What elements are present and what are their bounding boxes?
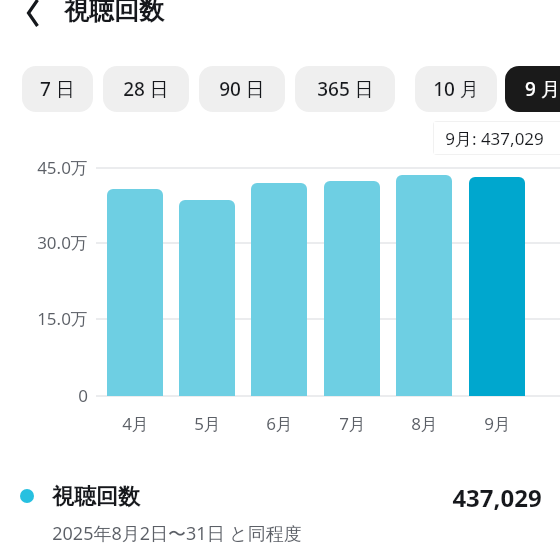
staticText: 9月: 437,029 <box>445 127 544 150</box>
staticText: 4月 <box>122 412 149 435</box>
button[interactable] <box>107 189 163 396</box>
staticText: 365 日 <box>317 76 374 102</box>
staticText: 8月 <box>411 412 438 435</box>
button[interactable]: 28 日 <box>103 66 189 112</box>
staticText: 30.0万 <box>37 231 88 254</box>
button[interactable]: 視聴回数 <box>0 481 560 513</box>
staticText: 0 <box>78 384 88 407</box>
button[interactable] <box>251 183 307 396</box>
button[interactable]: 10 月 <box>415 66 497 112</box>
staticText: 9 月 <box>525 76 560 102</box>
staticText: 6月 <box>266 412 293 435</box>
staticText: 5月 <box>194 412 221 435</box>
staticText: 7 日 <box>40 76 75 102</box>
button[interactable]: 7 日 <box>22 66 93 112</box>
button[interactable] <box>179 200 235 396</box>
staticText: 15.0万 <box>37 307 88 330</box>
staticText: 7月 <box>339 412 366 435</box>
staticText: 視聴回数 <box>52 483 140 511</box>
button[interactable] <box>469 177 525 396</box>
button[interactable]: Back <box>13 0 53 33</box>
button[interactable] <box>396 175 452 396</box>
button[interactable]: 9 月 <box>505 66 560 112</box>
staticText: 45.0万 <box>37 156 88 179</box>
staticText: 2025年8月2日〜31日 と同程度 <box>52 521 302 546</box>
button[interactable] <box>324 181 380 396</box>
button[interactable]: 365 日 <box>295 66 395 112</box>
button[interactable]: 90 日 <box>199 66 285 112</box>
staticText: 28 日 <box>123 76 169 102</box>
staticText: 90 日 <box>219 76 265 102</box>
staticText: 10 月 <box>433 76 479 102</box>
staticText: 9月 <box>484 412 511 435</box>
staticText: 437,029 <box>452 481 542 513</box>
staticText: 視聴回数 <box>64 0 164 26</box>
